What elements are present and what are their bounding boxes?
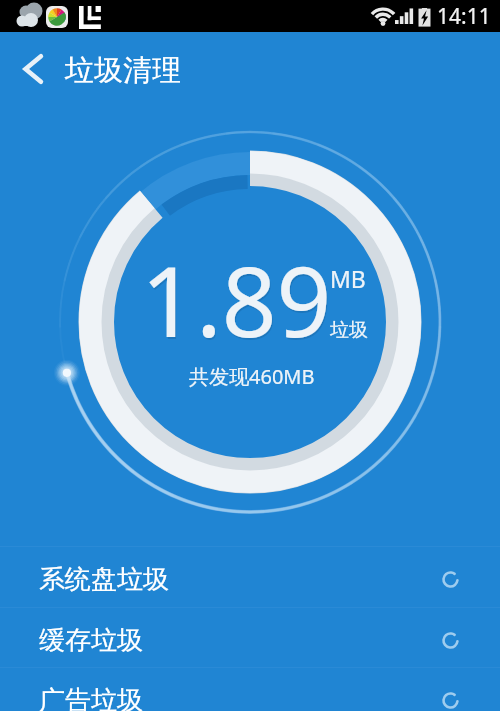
staticText: 缓存垃圾	[39, 624, 143, 657]
staticText: MB	[330, 263, 366, 294]
staticText: 系统盘垃圾	[39, 563, 169, 596]
staticText: 广告垃圾	[39, 684, 143, 711]
button[interactable]: 缓存垃圾	[0, 610, 500, 670]
staticText: 1.89	[142, 236, 333, 367]
button[interactable]: Back	[0, 32, 58, 102]
staticText: 14:11	[437, 2, 491, 31]
staticText: 1.89	[141, 234, 332, 365]
staticText: 垃圾清理	[65, 52, 181, 89]
staticText: 垃圾	[330, 318, 368, 342]
button[interactable]: 系统盘垃圾	[0, 549, 500, 609]
staticText: 共发现460MB	[189, 363, 315, 390]
button[interactable]: 广告垃圾	[0, 670, 500, 711]
